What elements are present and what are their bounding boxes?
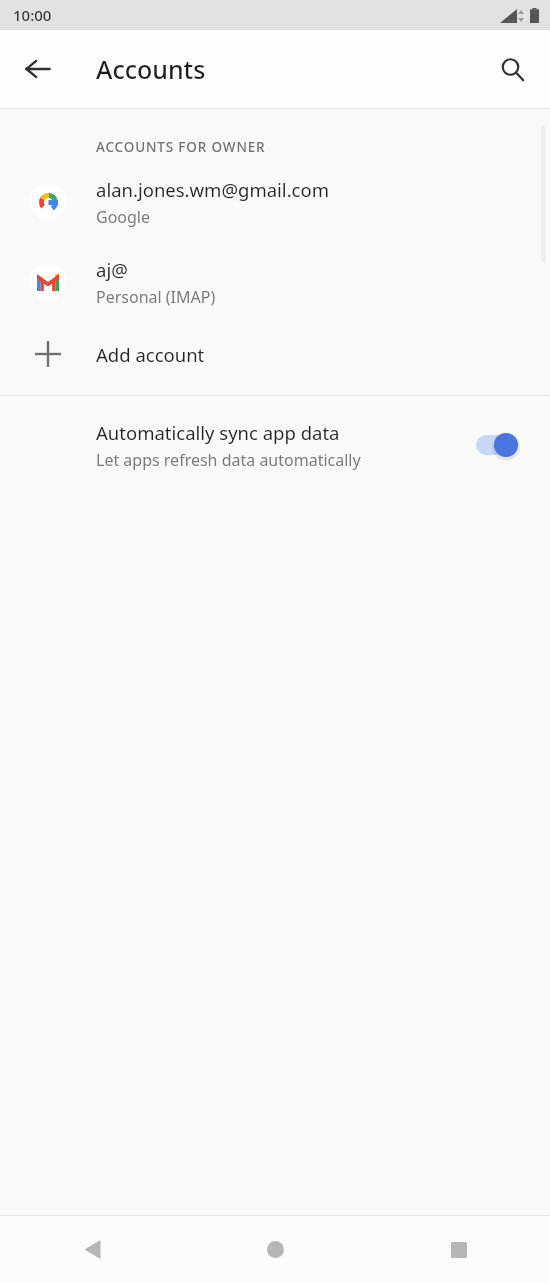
button[interactable]: Back [0,1216,184,1283]
staticText: Let apps refresh data automatically [96,449,361,471]
staticText: aj@ [96,257,128,282]
button[interactable]: Automatically sync app data [0,412,550,478]
staticText: alan.jones.wm@gmail.com [96,177,329,202]
button[interactable]: Home [184,1216,367,1283]
staticText: 10:00 [13,5,52,25]
staticText: ACCOUNTS FOR OWNER [96,138,266,156]
button[interactable]: Recent apps [367,1216,550,1283]
button[interactable]: aj@ [0,251,550,313]
button[interactable]: Add account [0,331,550,377]
staticText: Google [96,206,151,228]
button[interactable]: Search [486,43,538,95]
staticText: Accounts [96,52,206,86]
staticText: Automatically sync app data [96,420,340,445]
button[interactable]: alan.jones.wm@gmail.com [0,171,550,233]
button[interactable]: Back [12,43,64,95]
staticText: Personal (IMAP) [96,286,216,308]
staticText: Add account [96,342,205,367]
